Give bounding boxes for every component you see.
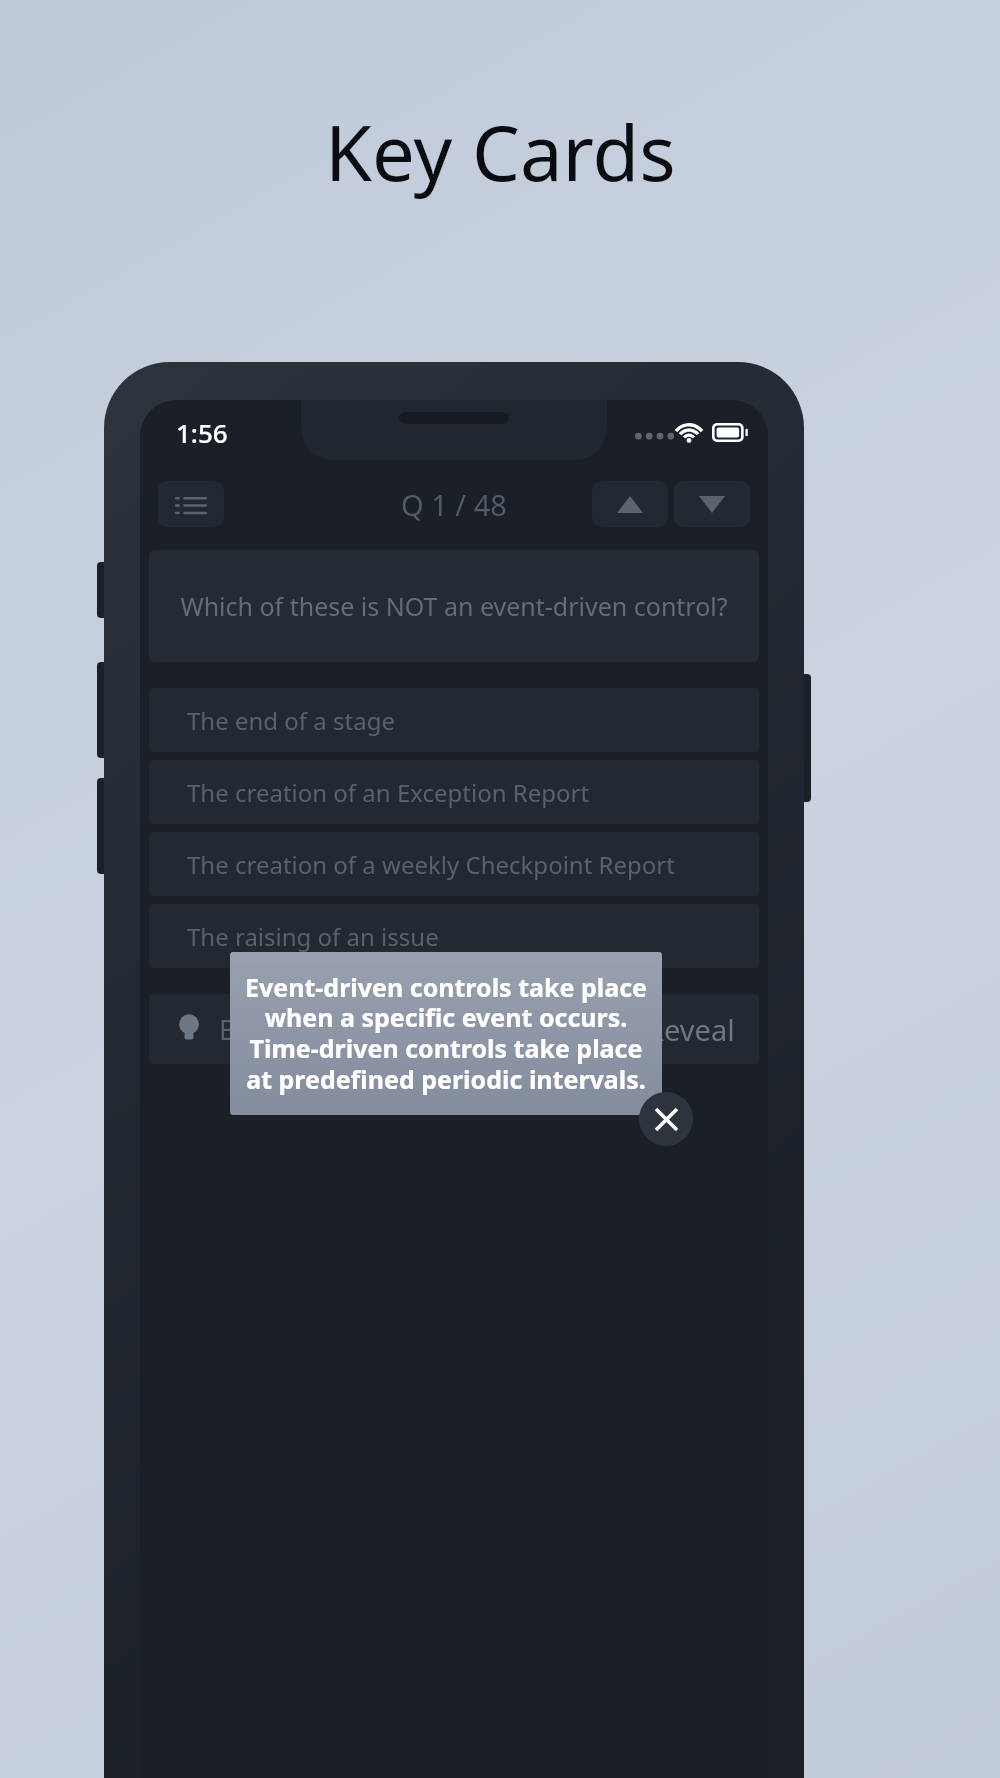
- button[interactable]: Previous: [592, 481, 668, 527]
- staticText: 1:56: [176, 415, 228, 450]
- staticText: The raising of an issue: [187, 920, 439, 953]
- staticText: Explain: [219, 1011, 311, 1048]
- button[interactable]: Explain: [149, 994, 759, 1064]
- staticText: Event-driven controls take place when a …: [244, 970, 648, 1097]
- button[interactable]: Next: [674, 481, 750, 527]
- button[interactable]: The creation of a weekly Checkpoint Repo…: [149, 832, 759, 896]
- button[interactable]: Close: [639, 1092, 693, 1146]
- button[interactable]: The end of a stage: [149, 688, 759, 752]
- button[interactable]: The creation of an Exception Report: [149, 760, 759, 824]
- staticText: Reveal: [646, 1010, 735, 1049]
- staticText: The creation of an Exception Report: [187, 776, 590, 809]
- staticText: Key Cards: [325, 100, 676, 204]
- staticText: Q 1 / 48: [401, 485, 507, 524]
- button[interactable]: Question list: [158, 481, 224, 527]
- button[interactable]: The raising of an issue: [149, 904, 759, 968]
- staticText: The end of a stage: [187, 704, 395, 737]
- staticText: Which of these is NOT an event-driven co…: [180, 589, 728, 623]
- staticText: The creation of a weekly Checkpoint Repo…: [187, 848, 675, 881]
